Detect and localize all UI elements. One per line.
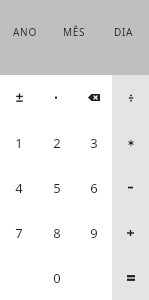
button[interactable]: Equals [112,255,149,300]
button[interactable]: 6 [75,165,112,210]
button[interactable]: Backspace [75,75,112,120]
staticText: 9 [90,224,98,242]
staticText: 6 [90,179,98,197]
button[interactable]: Plus [112,210,149,255]
button[interactable]: DIA [99,18,149,46]
button[interactable]: 9 [75,210,112,255]
button[interactable]: 4 [0,165,38,210]
staticText: 1 [15,134,23,152]
staticText: 7 [15,224,23,242]
button[interactable]: Multiply [112,120,149,165]
button[interactable]: 2 [38,120,75,165]
staticText: 3 [90,134,98,152]
button[interactable]: 5 [38,165,75,210]
button[interactable]: 3 [75,120,112,165]
button[interactable]: Decimal separator [38,75,75,120]
staticText: 2 [53,134,61,152]
staticText: DIA [114,25,134,39]
staticText: 5 [53,179,61,197]
button[interactable]: ANO [0,18,49,46]
staticText: ANO [13,25,37,39]
button[interactable]: Minus [112,165,149,210]
button[interactable]: 8 [38,210,75,255]
button[interactable]: 0 [38,255,75,300]
button[interactable]: Divide [112,75,149,120]
staticText: 4 [15,179,23,197]
button[interactable]: 1 [0,120,38,165]
staticText: 8 [53,224,61,242]
staticText: MÊS [63,25,86,39]
button[interactable]: MÊS [49,18,99,46]
button[interactable]: 7 [0,210,38,255]
button[interactable]: Plus minus [0,75,38,120]
staticText: 0 [53,269,61,287]
